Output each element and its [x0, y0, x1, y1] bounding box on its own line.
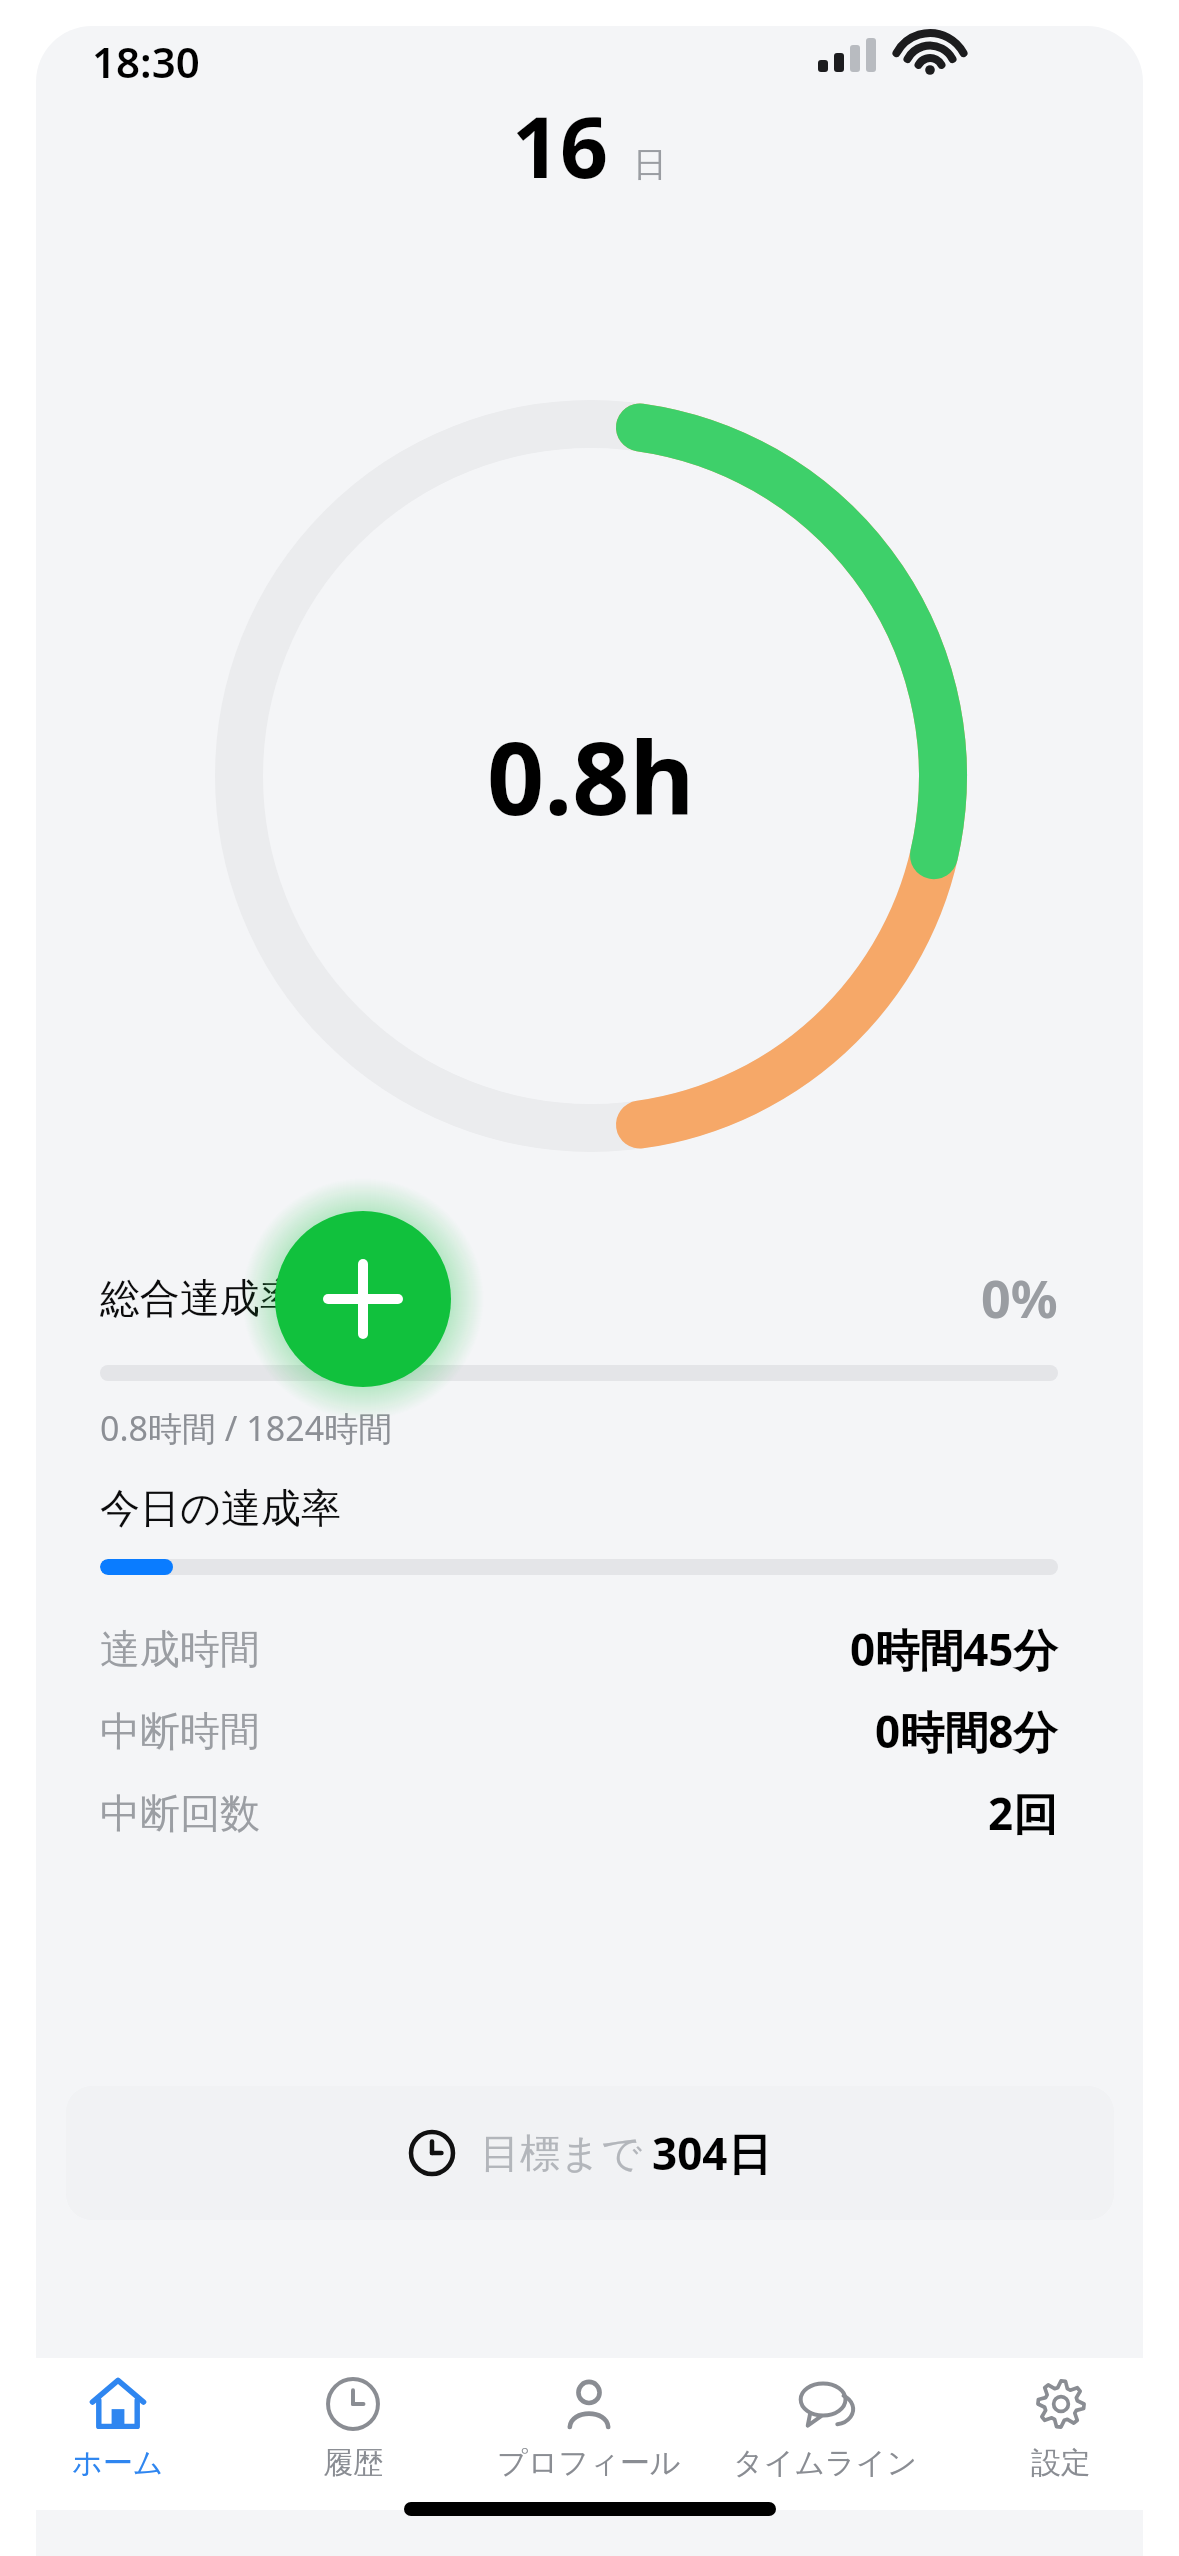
- staticText: 2回: [988, 1783, 1058, 1843]
- staticText: 設定: [1031, 2444, 1091, 2482]
- button[interactable]: ホーム: [0, 2358, 235, 2510]
- staticText: 0.8h: [487, 708, 695, 844]
- staticText: プロフィール: [497, 2444, 681, 2482]
- button[interactable]: 達成時間: [100, 1619, 1058, 1679]
- button[interactable]: 履歴: [235, 2358, 471, 2510]
- staticText: 達成時間: [100, 1624, 260, 1674]
- staticText: ホーム: [72, 2444, 164, 2482]
- button[interactable]: 中断回数: [100, 1783, 1058, 1843]
- staticText: 中断回数: [100, 1788, 260, 1838]
- staticText: 中断時間: [100, 1706, 260, 1756]
- button[interactable]: タイムライン: [707, 2358, 943, 2510]
- staticText: 総合達成率: [100, 1273, 300, 1323]
- staticText: 今日の達成率: [100, 1483, 341, 1533]
- staticText: 目標まで: [480, 2128, 642, 2178]
- staticText: 18:30: [92, 33, 200, 90]
- staticText: タイムライン: [733, 2444, 918, 2482]
- staticText: 304日: [652, 2123, 772, 2183]
- staticText: 16: [512, 88, 609, 202]
- staticText: 0%: [981, 1262, 1058, 1333]
- staticText: 0.8時間 / 1824時間: [100, 1405, 393, 1451]
- button[interactable]: 目標まで: [66, 2086, 1114, 2220]
- staticText: 履歴: [323, 2444, 383, 2482]
- button[interactable]: 設定: [943, 2358, 1179, 2510]
- staticText: 0時間45分: [850, 1619, 1058, 1679]
- button[interactable]: プロフィール: [471, 2358, 707, 2510]
- button[interactable]: 中断時間: [100, 1701, 1058, 1761]
- staticText: 0時間8分: [875, 1701, 1058, 1761]
- staticText: 日: [633, 143, 667, 186]
- button[interactable]: 追加: [275, 1211, 451, 1387]
